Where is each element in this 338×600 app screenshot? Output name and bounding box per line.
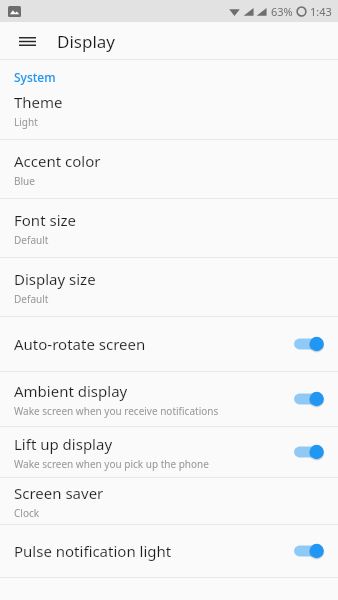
- button[interactable]: Display size: [0, 258, 338, 316]
- staticText: System: [14, 69, 56, 85]
- staticText: Theme: [14, 92, 63, 112]
- staticText: Clock: [14, 506, 40, 520]
- button[interactable]: Auto-rotate screen: [0, 317, 338, 371]
- button[interactable]: Toggle setting: [292, 386, 326, 412]
- button[interactable]: Font size: [0, 199, 338, 257]
- staticText: Screen saver: [14, 483, 104, 503]
- staticText: Ambient display: [14, 381, 128, 401]
- staticText: Display size: [14, 269, 96, 289]
- button[interactable]: Lift up display: [0, 427, 338, 477]
- button[interactable]: Toggle setting: [292, 538, 326, 564]
- staticText: Accent color: [14, 151, 101, 171]
- staticText: Wake screen when you pick up the phone: [14, 457, 209, 471]
- staticText: 1:43: [310, 4, 332, 19]
- staticText: Wake screen when you receive notificatio…: [14, 404, 219, 418]
- staticText: 63%: [271, 4, 293, 19]
- button[interactable]: Ambient display: [0, 372, 338, 426]
- button[interactable]: Screen saver: [0, 478, 338, 524]
- button[interactable]: Toggle setting: [292, 439, 326, 465]
- staticText: Blue: [14, 174, 35, 188]
- button[interactable]: Open navigation menu: [8, 22, 46, 60]
- staticText: Font size: [14, 210, 77, 230]
- staticText: Default: [14, 233, 49, 247]
- button[interactable]: Toggle setting: [292, 331, 326, 357]
- staticText: Pulse notification light: [14, 541, 172, 561]
- staticText: Auto-rotate screen: [14, 334, 146, 354]
- staticText: Display: [57, 30, 115, 53]
- staticText: Default: [14, 292, 49, 306]
- button[interactable]: Theme: [0, 81, 338, 139]
- staticText: Lift up display: [14, 434, 113, 454]
- button[interactable]: Accent color: [0, 140, 338, 198]
- button[interactable]: Pulse notification light: [0, 525, 338, 577]
- staticText: Light: [14, 115, 38, 129]
